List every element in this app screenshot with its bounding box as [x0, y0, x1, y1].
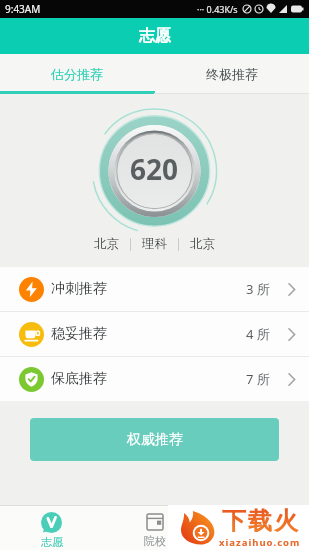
staticText: 下载火	[221, 506, 299, 536]
staticText: 志愿	[41, 535, 63, 549]
staticText: 4 所	[246, 325, 270, 343]
staticText: 9:43AM	[5, 2, 41, 16]
staticText: 志愿	[139, 26, 171, 46]
staticText: 院校	[144, 534, 166, 548]
staticText: 权威推荐	[127, 431, 183, 449]
staticText: ··· 0.43K/s	[197, 3, 238, 15]
button[interactable]: 保底推荐	[0, 357, 309, 401]
staticText: 保底推荐	[51, 370, 107, 388]
button[interactable]: 稳妥推荐	[0, 312, 309, 356]
button[interactable]: 志愿	[0, 505, 103, 550]
button[interactable]: 冲刺推荐	[0, 267, 309, 311]
staticText: 620	[130, 150, 179, 188]
staticText: 北京	[190, 236, 215, 252]
staticText: 7 所	[246, 370, 270, 388]
staticText: 稳妥推荐	[51, 325, 107, 343]
staticText: 北京	[94, 236, 119, 252]
button[interactable]	[206, 505, 309, 550]
staticText: 3 所	[246, 280, 270, 298]
button[interactable]: 院校	[103, 505, 206, 550]
button[interactable]: 权威推荐	[30, 418, 279, 461]
staticText: 冲刺推荐	[51, 280, 107, 298]
staticText: 估分推荐	[51, 66, 103, 82]
staticText: 终极推荐	[206, 66, 258, 82]
staticText: xiazaihuo.com	[219, 536, 301, 549]
button[interactable]: 估分推荐	[0, 54, 154, 94]
button[interactable]: 终极推荐	[154, 54, 309, 94]
staticText: 理科	[142, 236, 167, 252]
